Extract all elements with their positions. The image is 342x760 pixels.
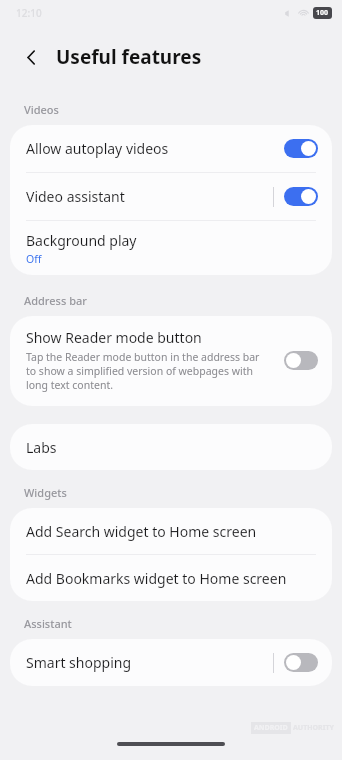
staticText: Show Reader mode button <box>26 328 202 347</box>
staticText: Add Search widget to Home screen <box>26 522 257 541</box>
button[interactable]: Off <box>284 653 318 672</box>
button[interactable]: Allow autoplay videos <box>10 125 332 172</box>
staticText: Assistant <box>24 616 72 631</box>
staticText: Widgets <box>24 485 67 500</box>
button[interactable]: Add Search widget to Home screen <box>10 508 332 554</box>
button[interactable]: Smart shopping <box>10 639 332 686</box>
staticText: Smart shopping <box>26 653 273 672</box>
staticText: Address bar <box>24 293 87 308</box>
staticText: 100 <box>316 8 329 18</box>
staticText: ANDROID <box>254 723 288 733</box>
staticText: Off <box>26 252 42 266</box>
button[interactable]: On <box>284 187 318 206</box>
button[interactable]: Video assistant <box>10 173 332 220</box>
button[interactable]: Back <box>14 40 48 74</box>
staticText: Add Bookmarks widget to Home screen <box>26 569 287 588</box>
button[interactable]: Background play <box>10 221 332 275</box>
staticText: AUTHORITY <box>293 723 334 733</box>
staticText: Tap the Reader mode button in the addres… <box>26 350 272 392</box>
button[interactable]: Off <box>284 351 318 370</box>
button[interactable]: On <box>284 139 318 158</box>
staticText: Allow autoplay videos <box>26 139 284 158</box>
staticText: Videos <box>24 102 59 117</box>
staticText: Useful features <box>56 44 202 70</box>
staticText: Labs <box>26 438 57 457</box>
button[interactable]: Add Bookmarks widget to Home screen <box>10 555 332 601</box>
staticText: Video assistant <box>26 187 273 206</box>
button[interactable]: Labs <box>10 424 332 470</box>
staticText: Background play <box>26 231 137 250</box>
staticText: 12:10 <box>16 6 42 20</box>
button[interactable]: Show Reader mode button <box>10 316 332 406</box>
